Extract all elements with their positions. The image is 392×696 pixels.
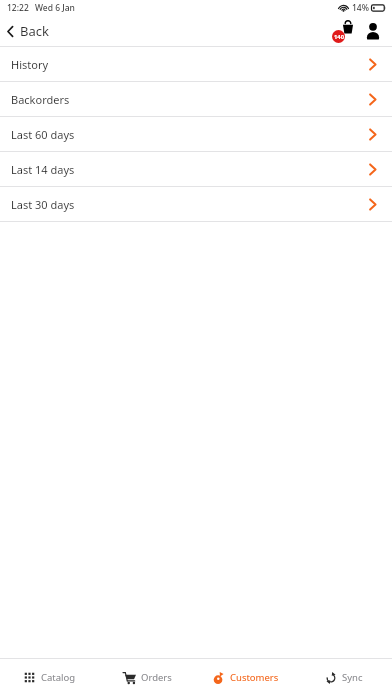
staticText: Wed 6 Jan [35, 2, 75, 14]
button[interactable]: Cart with 140 items [330, 18, 356, 44]
staticText: 140 [334, 33, 344, 41]
staticText: Sync [342, 671, 363, 684]
button[interactable]: Account [361, 19, 385, 43]
staticText: Last 60 days [11, 127, 75, 142]
button[interactable]: Sync [294, 659, 392, 696]
button[interactable]: Back [0, 16, 59, 46]
staticText: Last 30 days [11, 197, 75, 212]
staticText: Last 14 days [11, 162, 75, 177]
staticText: Orders [141, 671, 172, 684]
button[interactable]: History [0, 47, 392, 81]
staticText: Catalog [41, 671, 76, 684]
staticText: History [11, 57, 49, 72]
button[interactable]: Orders [98, 659, 196, 696]
staticText: 14% [352, 2, 369, 14]
button[interactable]: Backorders [0, 82, 392, 116]
button[interactable]: Last 60 days [0, 117, 392, 151]
button[interactable]: Customers [196, 659, 294, 696]
button[interactable]: Last 30 days [0, 187, 392, 221]
button[interactable]: Last 14 days [0, 152, 392, 186]
staticText: 12:22 [7, 2, 29, 14]
button[interactable]: Catalog [0, 659, 98, 696]
staticText: Backorders [11, 92, 70, 107]
staticText: Customers [230, 671, 279, 684]
staticText: Back [20, 22, 49, 40]
